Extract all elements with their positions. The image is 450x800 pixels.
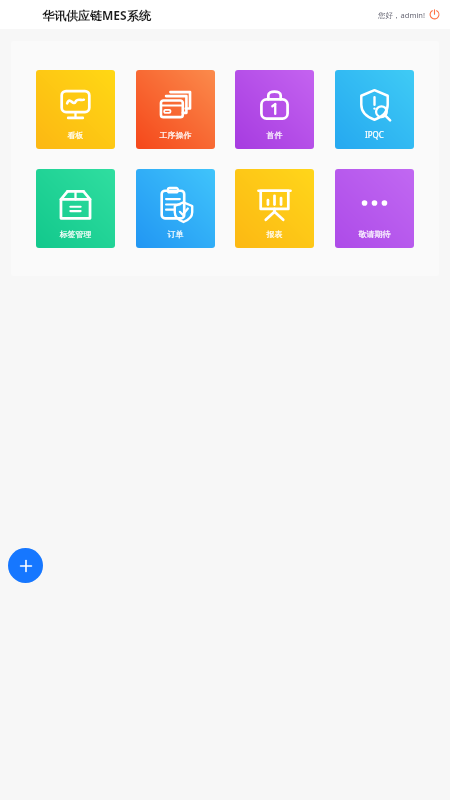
staticText: IPQC	[335, 129, 414, 140]
button[interactable]: 首件	[235, 70, 314, 149]
other: Logout	[429, 9, 440, 20]
button[interactable]: IPQC	[335, 70, 414, 149]
staticText: 华讯供应链MES系统	[42, 7, 151, 23]
button[interactable]: 工序操作	[136, 70, 215, 149]
staticText: 报表	[235, 229, 314, 239]
staticText: 您好，admin!	[378, 10, 425, 20]
button[interactable]: 看板	[36, 70, 115, 149]
button[interactable]: 订单	[136, 169, 215, 248]
staticText: 工序操作	[136, 130, 215, 140]
staticText: 敬请期待	[335, 229, 414, 239]
staticText: 订单	[136, 229, 215, 239]
button[interactable]: 报表	[235, 169, 314, 248]
button[interactable]: 敬请期待	[335, 169, 414, 248]
button[interactable]: 您好，admin!	[378, 9, 440, 20]
button[interactable]: Add	[8, 548, 43, 583]
staticText: 首件	[235, 130, 314, 140]
staticText: 看板	[36, 130, 115, 140]
button[interactable]: 标签管理	[36, 169, 115, 248]
staticText: 标签管理	[36, 229, 115, 239]
